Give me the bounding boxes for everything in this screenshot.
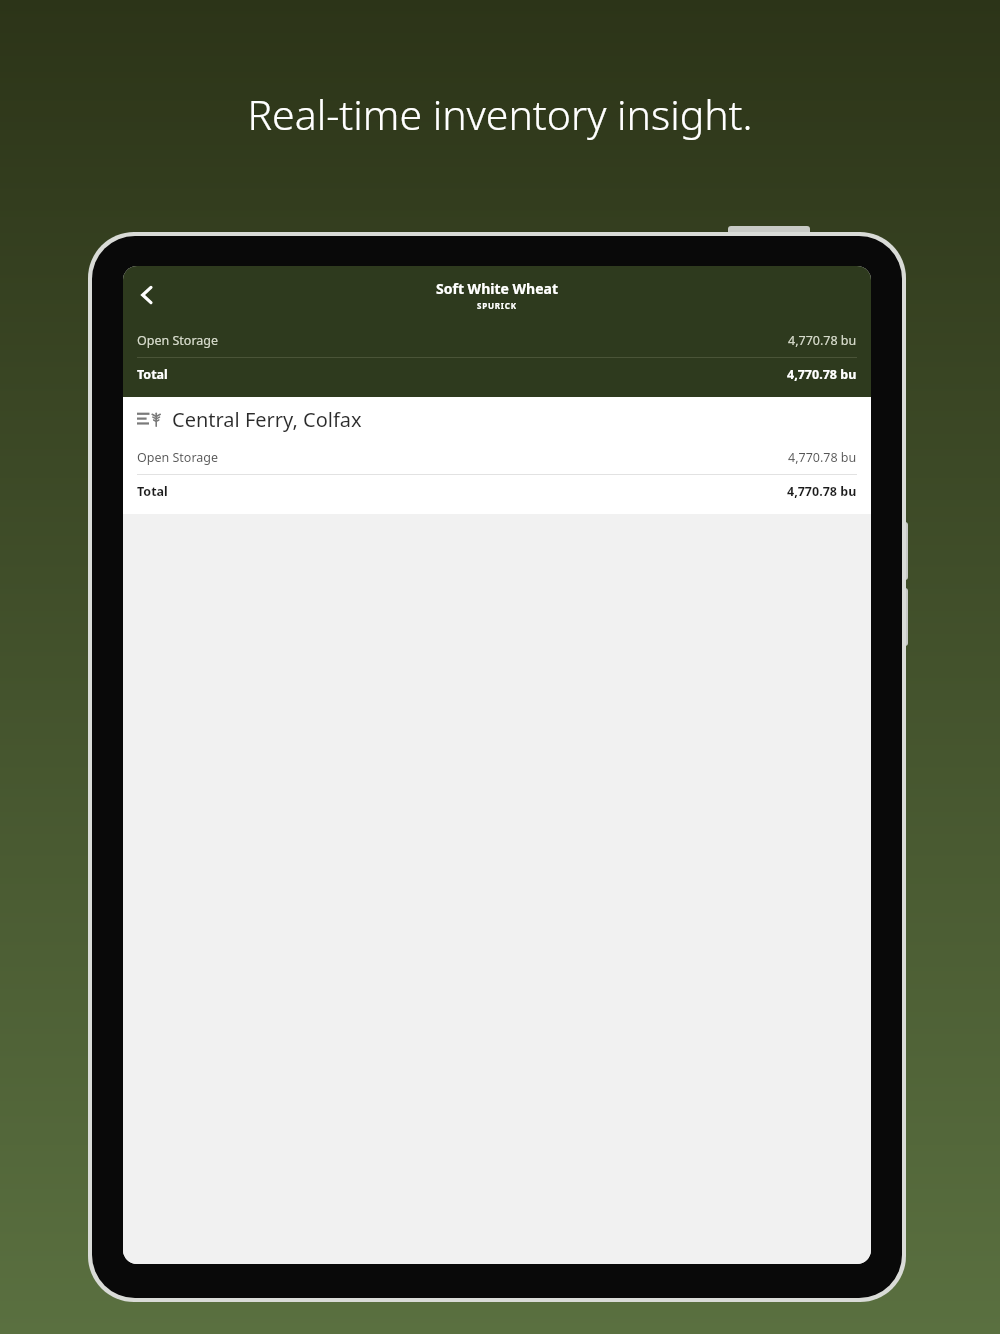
staticText: Soft White Wheat [436, 279, 558, 298]
staticText: 4,770.78 bu [787, 366, 857, 383]
staticText: Open Storage [137, 449, 219, 466]
staticText: Central Ferry, Colfax [172, 406, 362, 433]
button[interactable]: Total [123, 358, 871, 391]
staticText: Total [137, 483, 168, 500]
button[interactable]: Total [123, 475, 871, 508]
staticText: Open Storage [137, 332, 219, 349]
staticText: SPURICK [477, 300, 517, 311]
staticText: 4,770.78 bu [787, 483, 857, 500]
staticText: 4,770.78 bu [788, 449, 857, 466]
button[interactable]: Open Storage [123, 324, 871, 357]
staticText: Total [137, 366, 168, 383]
button[interactable]: Open Storage [123, 441, 871, 474]
staticText: Real-time inventory insight. [0, 86, 1000, 142]
staticText: 4,770.78 bu [788, 332, 857, 349]
button[interactable]: Central Ferry, Colfax [123, 397, 871, 441]
button[interactable]: Back [123, 271, 171, 319]
